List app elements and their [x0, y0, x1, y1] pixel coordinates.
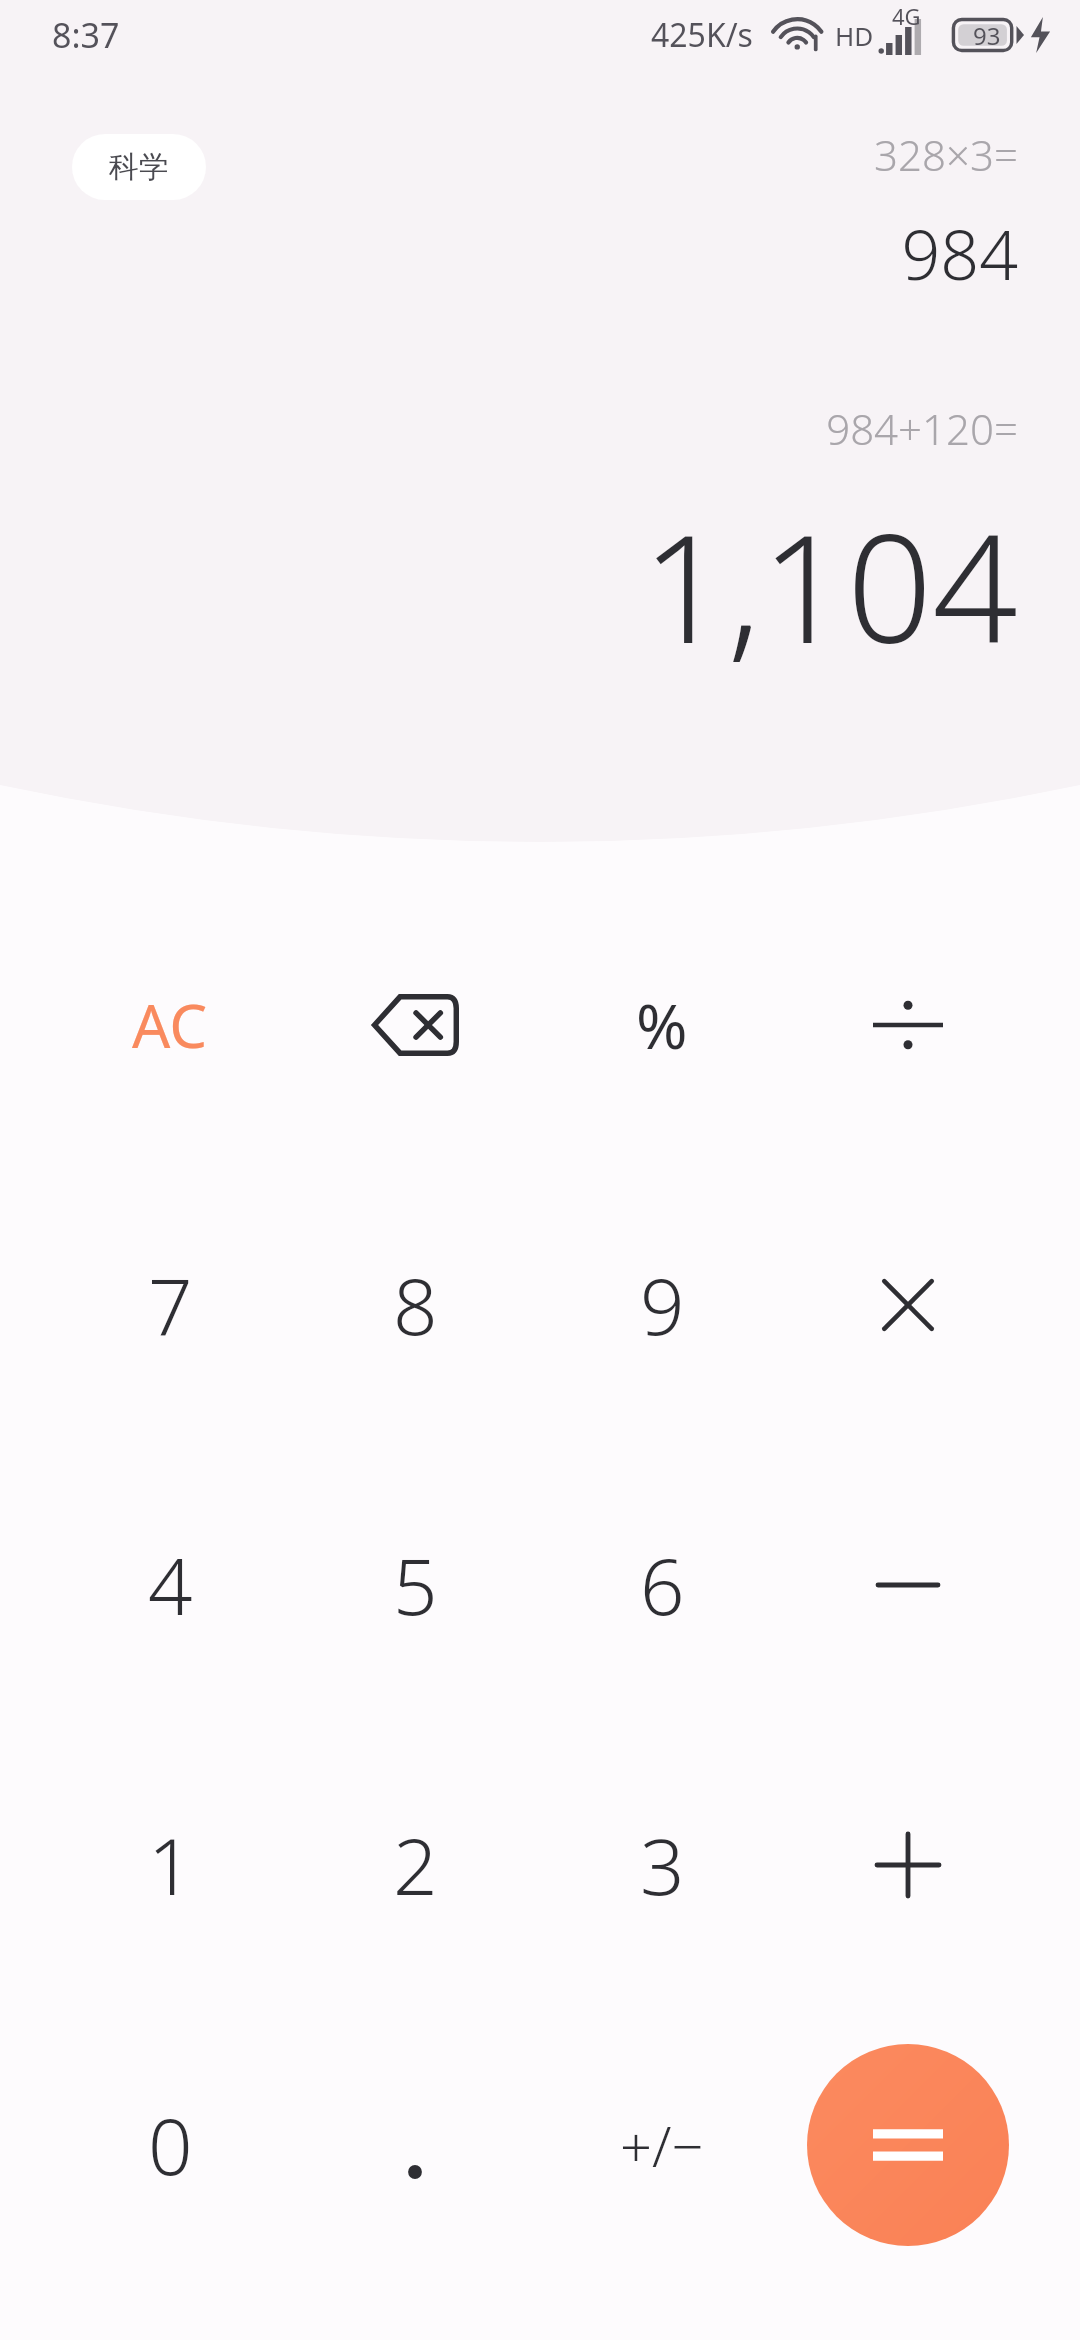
- staticText: +/−: [620, 2107, 704, 2183]
- staticText: 4G: [892, 1, 921, 31]
- staticText: 科学: [109, 148, 169, 186]
- button[interactable]: 7: [50, 1180, 290, 1430]
- button[interactable]: 3: [542, 1740, 782, 1990]
- staticText: 9: [640, 1252, 685, 1358]
- staticText: 93: [973, 19, 1001, 52]
- staticText: 425K/s: [651, 13, 753, 57]
- staticText: 984: [901, 207, 1018, 300]
- button[interactable]: %: [542, 900, 782, 1150]
- button[interactable]: 9: [542, 1180, 782, 1430]
- button[interactable]: Multiply: [788, 1180, 1028, 1430]
- staticText: %: [636, 983, 688, 1067]
- button[interactable]: 6: [542, 1460, 782, 1710]
- button[interactable]: Backspace: [295, 900, 535, 1150]
- staticText: 4: [148, 1532, 193, 1638]
- staticText: 8: [393, 1252, 438, 1358]
- button[interactable]: 8: [295, 1180, 535, 1430]
- button[interactable]: AC: [50, 900, 290, 1150]
- staticText: 8:37: [52, 12, 120, 58]
- staticText: 5: [393, 1532, 438, 1638]
- button[interactable]: 5: [295, 1460, 535, 1710]
- staticText: 7: [148, 1252, 193, 1358]
- button[interactable]: 2: [295, 1740, 535, 1990]
- button[interactable]: Minus: [788, 1460, 1028, 1710]
- staticText: 6: [640, 1532, 685, 1638]
- staticText: 3: [640, 1812, 685, 1918]
- staticText: HD: [835, 18, 874, 53]
- staticText: 328×3=: [874, 126, 1018, 183]
- button[interactable]: 328×3=: [0, 126, 1018, 300]
- button[interactable]: 4: [50, 1460, 290, 1710]
- button[interactable]: 科学: [72, 134, 206, 200]
- button[interactable]: Decimal point: [295, 2020, 535, 2270]
- button[interactable]: Equals: [807, 2044, 1009, 2246]
- staticText: 984+120=: [826, 400, 1018, 457]
- staticText: AC: [132, 984, 208, 1066]
- button[interactable]: 1: [50, 1740, 290, 1990]
- staticText: 1,104: [641, 483, 1018, 687]
- staticText: 1: [148, 1812, 193, 1918]
- button[interactable]: 0: [50, 2020, 290, 2270]
- button[interactable]: Divide: [788, 900, 1028, 1150]
- button[interactable]: Plus: [788, 1740, 1028, 1990]
- button[interactable]: +/−: [542, 2020, 782, 2270]
- staticText: 0: [148, 2092, 193, 2198]
- button[interactable]: 984+120=: [0, 400, 1018, 687]
- staticText: 2: [393, 1812, 438, 1918]
